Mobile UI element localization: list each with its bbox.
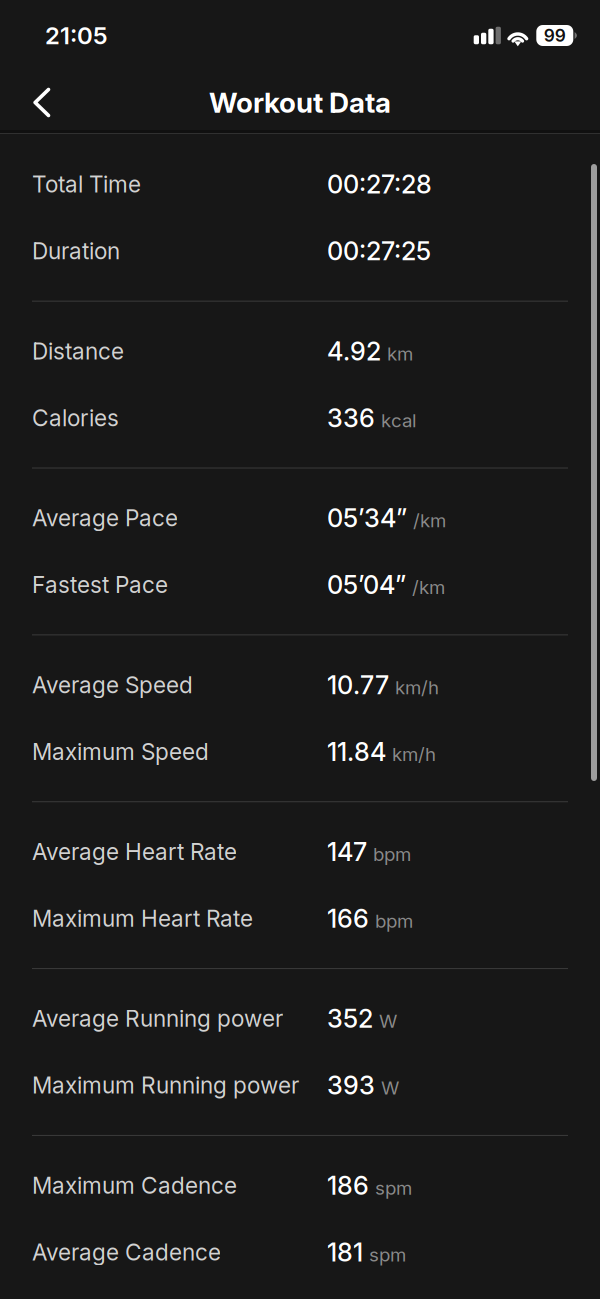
button[interactable]: Fastest Pace [0, 551, 600, 618]
button[interactable]: Calories [0, 385, 600, 451]
staticText: Average Running power [32, 1005, 283, 1032]
staticText: 05’34” [327, 503, 407, 533]
staticText: Calories [32, 404, 119, 432]
staticText: 186 [327, 1170, 369, 1201]
staticText: 05’04” [327, 569, 406, 600]
staticText: 4.92 [327, 336, 381, 367]
staticText: 21:05 [45, 21, 108, 50]
staticText: km [387, 342, 413, 365]
staticText: Workout Data [209, 86, 391, 119]
staticText: /km [413, 509, 446, 532]
staticText: kcal [381, 409, 417, 432]
staticText: spm [375, 1177, 412, 1199]
button[interactable]: Average Cadence [0, 1219, 600, 1286]
staticText: Average Heart Rate [32, 838, 237, 865]
staticText: W [381, 1076, 399, 1099]
staticText: 00:27:28 [327, 169, 432, 200]
button[interactable]: Back [0, 71, 84, 134]
staticText: 166 [327, 903, 369, 934]
button[interactable]: Maximum Speed [0, 718, 600, 785]
staticText: Maximum Speed [32, 738, 209, 765]
button[interactable]: Maximum Running power [0, 1052, 600, 1119]
staticText: /km [412, 576, 445, 599]
staticText: Average Pace [32, 504, 178, 532]
staticText: bpm [375, 910, 413, 932]
staticText: 11.84 [327, 736, 386, 767]
staticText: Maximum Heart Rate [32, 905, 253, 932]
staticText: 393 [327, 1070, 375, 1101]
staticText: 00:27:25 [327, 236, 431, 266]
button[interactable]: Maximum Cadence [0, 1152, 600, 1219]
button[interactable]: Average Speed [0, 651, 600, 718]
button[interactable]: Average Pace [0, 485, 600, 551]
staticText: km/h [395, 676, 439, 699]
staticText: Total Time [32, 171, 141, 198]
staticText: Fastest Pace [32, 571, 168, 598]
staticText: Distance [32, 337, 124, 365]
button[interactable]: Maximum Heart Rate [0, 885, 600, 952]
staticText: 10.77 [327, 670, 389, 700]
button[interactable]: Duration [0, 218, 600, 285]
staticText: 147 [327, 836, 367, 867]
staticText: Maximum Running power [32, 1072, 299, 1099]
staticText: bpm [373, 843, 411, 865]
staticText: Average Speed [32, 671, 193, 699]
staticText: spm [369, 1243, 406, 1266]
staticText: km/h [392, 743, 436, 765]
staticText: W [379, 1010, 397, 1032]
staticText: Maximum Cadence [32, 1172, 237, 1199]
button[interactable]: Distance [0, 318, 600, 385]
staticText: 352 [327, 1003, 373, 1034]
staticText: Average Cadence [32, 1238, 221, 1266]
staticText: Duration [32, 237, 120, 265]
staticText: 99 [544, 25, 566, 46]
staticText: 336 [327, 403, 375, 433]
button[interactable]: Average Heart Rate [0, 818, 600, 885]
staticText: 181 [327, 1237, 363, 1268]
button[interactable]: Average Running power [0, 985, 600, 1052]
button[interactable]: Total Time [0, 151, 600, 218]
